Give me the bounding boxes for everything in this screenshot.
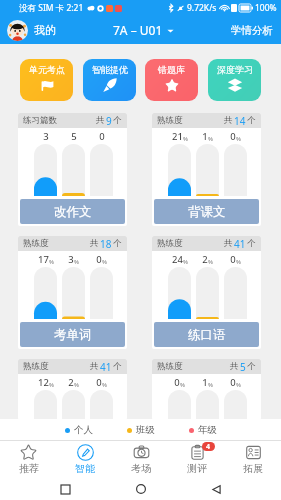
button[interactable]: 学情分析 [231, 24, 273, 37]
staticText: % [49, 381, 54, 389]
staticText: 0 [230, 130, 236, 143]
staticText: % [49, 258, 54, 266]
staticText: % [208, 135, 213, 143]
staticText: 5 [240, 360, 246, 374]
button[interactable]: 背课文 [154, 199, 259, 224]
button[interactable]: Home [131, 479, 151, 499]
button[interactable]: 我的 [34, 23, 56, 37]
staticText: 个人 [74, 424, 93, 436]
staticText: 0 [99, 130, 105, 143]
staticText: 100% [255, 2, 277, 14]
staticText: 共 [230, 361, 239, 372]
staticText: 班级 [136, 424, 155, 436]
staticText: 3 [68, 253, 74, 266]
staticText: 24 [172, 253, 183, 266]
staticText: 0 [230, 253, 236, 266]
button[interactable]: 考单词 [20, 322, 125, 347]
staticText: 共 [96, 115, 105, 126]
staticText: % [183, 258, 188, 266]
staticText: 7A – U01 [113, 22, 163, 38]
button[interactable]: 深度学习 [208, 59, 261, 101]
staticText: 单元考点 [29, 64, 65, 75]
staticText: % [74, 258, 79, 266]
staticText: 共 [90, 238, 99, 249]
staticText: 熟练度 [157, 115, 183, 126]
button[interactable]: Back [206, 479, 226, 499]
staticText: 17 [38, 253, 49, 266]
staticText: 21 [172, 130, 183, 143]
staticText: 4 [206, 442, 211, 451]
staticText: 0 [174, 376, 180, 389]
staticText: 年级 [198, 424, 217, 436]
staticText: 练口语 [188, 327, 226, 343]
staticText: 41 [100, 360, 112, 374]
staticText: 智能 [75, 462, 95, 475]
button[interactable]: 智能 [57, 441, 113, 477]
staticText: % [183, 135, 188, 143]
staticText: 拓展 [243, 462, 263, 475]
staticText: % [180, 381, 185, 389]
button[interactable]: 4 [169, 441, 225, 477]
staticText: 2 [202, 253, 208, 266]
button[interactable]: 推荐 [0, 441, 57, 477]
staticText: 共 [224, 115, 233, 126]
staticText: % [74, 381, 79, 389]
staticText: 考场 [131, 462, 151, 475]
staticText: 9 [106, 114, 112, 128]
button[interactable]: Recents [55, 479, 75, 499]
button[interactable]: 7A – U01 [113, 22, 174, 38]
staticText: 错题库 [158, 64, 185, 75]
staticText: % [208, 381, 213, 389]
staticText: 1 [202, 376, 208, 389]
staticText: 没有 SIM 卡 2:21 [19, 2, 84, 14]
staticText: % [236, 381, 241, 389]
staticText: 考单词 [54, 327, 92, 343]
staticText: 熟练度 [23, 238, 49, 249]
staticText: 41 [234, 237, 246, 251]
staticText: 背课文 [188, 204, 226, 220]
button[interactable]: 错题库 [145, 59, 198, 101]
staticText: 深度学习 [217, 64, 253, 75]
button[interactable]: Profile avatar [7, 20, 28, 41]
staticText: 测评 [187, 462, 207, 475]
staticText: 2 [68, 376, 74, 389]
staticText: 个 [113, 238, 122, 249]
staticText: 推荐 [19, 462, 39, 475]
staticText: 1 [202, 130, 208, 143]
staticText: % [236, 258, 241, 266]
button[interactable]: 改作文 [20, 199, 125, 224]
staticText: % [102, 381, 107, 389]
staticText: 共 [90, 361, 99, 372]
button[interactable]: 智能提优 [83, 59, 136, 101]
button[interactable]: 单元考点 [20, 59, 73, 101]
staticText: 熟练度 [157, 361, 183, 372]
staticText: 0 [96, 253, 102, 266]
button[interactable]: 拓展 [225, 441, 281, 477]
staticText: 14 [234, 114, 246, 128]
staticText: 12 [38, 376, 49, 389]
staticText: % [236, 135, 241, 143]
staticText: 个 [247, 238, 256, 249]
staticText: 18 [100, 237, 112, 251]
staticText: 5 [71, 130, 77, 143]
staticText: 9.72K/s [187, 2, 217, 14]
staticText: 0 [96, 376, 102, 389]
staticText: 练习篇数 [23, 115, 57, 126]
staticText: 0 [230, 376, 236, 389]
staticText: 改作文 [54, 204, 92, 220]
staticText: 3 [43, 130, 49, 143]
button[interactable]: 考场 [113, 441, 169, 477]
staticText: 共 [224, 238, 233, 249]
staticText: 智能提优 [92, 64, 128, 75]
staticText: 个 [247, 115, 256, 126]
staticText: 熟练度 [23, 361, 49, 372]
staticText: 个 [247, 361, 256, 372]
staticText: 个 [113, 361, 122, 372]
staticText: % [102, 258, 107, 266]
staticText: 个 [113, 115, 122, 126]
staticText: % [208, 258, 213, 266]
staticText: 熟练度 [157, 238, 183, 249]
button[interactable]: 练口语 [154, 322, 259, 347]
